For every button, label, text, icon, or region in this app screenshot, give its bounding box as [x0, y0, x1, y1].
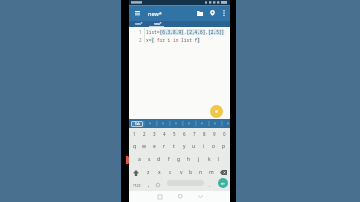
- button[interactable]: 7: [189, 128, 199, 140]
- button[interactable]: .: [205, 179, 215, 191]
- button[interactable]: x: [154, 166, 165, 179]
- button[interactable]: [206, 5, 218, 21]
- button[interactable]: ?123: [129, 179, 145, 191]
- staticText: l: [218, 156, 220, 163]
- staticText: 9: [213, 131, 216, 137]
- staticText: 7: [193, 131, 196, 137]
- button[interactable]: j: [194, 153, 204, 166]
- button[interactable]: c: [165, 166, 176, 179]
- staticText: 5: [173, 131, 176, 137]
- staticText: 0: [223, 131, 226, 137]
- staticText: h: [187, 156, 191, 163]
- button[interactable]: [194, 5, 206, 21]
- staticText: j: [198, 156, 200, 163]
- staticText: ,: [148, 182, 150, 189]
- staticText: o: [212, 143, 216, 150]
- button[interactable]: r: [159, 140, 169, 153]
- staticText: p: [222, 143, 226, 150]
- button[interactable]: o: [209, 140, 219, 153]
- button[interactable]: 6: [179, 128, 189, 140]
- button[interactable]: [215, 179, 230, 191]
- staticText: 2: [139, 37, 142, 43]
- staticText: 3: [153, 131, 156, 137]
- staticText: 4: [163, 131, 166, 137]
- staticText: 8: [203, 131, 206, 137]
- button[interactable]: e: [149, 140, 159, 153]
- staticText: u: [192, 143, 196, 150]
- button[interactable]: 9: [209, 128, 219, 140]
- button[interactable]: 3: [149, 128, 159, 140]
- button[interactable]: 5: [169, 128, 179, 140]
- button[interactable]: new*: [148, 21, 167, 27]
- staticText: i: [203, 143, 205, 150]
- button[interactable]: 1: [130, 128, 139, 140]
- button[interactable]: [210, 105, 223, 118]
- button[interactable]: new*: [129, 21, 148, 27]
- button[interactable]: a: [135, 153, 144, 166]
- staticText: x=[ for i in list f]: [146, 37, 200, 43]
- button[interactable]: l: [214, 153, 224, 166]
- button[interactable]: h: [184, 153, 194, 166]
- staticText: 1: [133, 131, 136, 137]
- button[interactable]: b: [186, 166, 196, 179]
- staticText: z: [147, 169, 150, 176]
- staticText: c: [169, 169, 172, 176]
- button[interactable]: 0: [219, 128, 229, 140]
- staticText: n: [199, 169, 203, 176]
- staticText: f: [168, 156, 170, 163]
- button[interactable]: [153, 179, 162, 191]
- button[interactable]: d: [154, 153, 164, 166]
- staticText: 6: [183, 131, 186, 137]
- button[interactable]: w: [139, 140, 149, 153]
- button[interactable]: [190, 191, 210, 202]
- staticText: x: [158, 169, 161, 176]
- button[interactable]: f: [164, 153, 174, 166]
- staticText: list=[6,3,8,9],[2,4,6],[2,5]]: [146, 29, 225, 35]
- button[interactable]: [129, 166, 143, 179]
- staticText: 2: [143, 131, 146, 137]
- staticText: a: [138, 156, 141, 163]
- staticText: new*: [135, 22, 143, 26]
- button[interactable]: n: [196, 166, 206, 179]
- staticText: b: [189, 169, 193, 176]
- button[interactable]: q: [130, 140, 139, 153]
- button[interactable]: z: [143, 166, 154, 179]
- staticText: g: [177, 156, 181, 163]
- button[interactable]: ,: [145, 179, 153, 191]
- button[interactable]: [216, 166, 230, 179]
- staticText: e: [153, 143, 156, 150]
- button[interactable]: y: [179, 140, 189, 153]
- staticText: Tab: [135, 122, 140, 126]
- staticText: 1: [139, 29, 142, 35]
- staticText: m: [209, 169, 214, 176]
- button[interactable]: s: [144, 153, 154, 166]
- staticText: ?123: [133, 183, 141, 188]
- staticText: t: [173, 143, 175, 150]
- button[interactable]: t: [169, 140, 179, 153]
- button[interactable]: v: [176, 166, 186, 179]
- button[interactable]: 8: [199, 128, 209, 140]
- button[interactable]: i: [199, 140, 209, 153]
- button[interactable]: [150, 191, 170, 202]
- staticText: y: [183, 143, 186, 150]
- button[interactable]: p: [219, 140, 229, 153]
- staticText: k: [208, 156, 211, 163]
- button[interactable]: g: [174, 153, 184, 166]
- staticText: w: [142, 143, 146, 150]
- staticText: new*: [154, 22, 162, 26]
- button[interactable]: Tab: [131, 121, 143, 127]
- staticText: .: [209, 182, 211, 189]
- button[interactable]: k: [204, 153, 214, 166]
- button[interactable]: new*: [148, 10, 162, 17]
- button[interactable]: [218, 5, 229, 21]
- staticText: r: [163, 143, 166, 150]
- button[interactable]: 4: [159, 128, 169, 140]
- button[interactable]: 2: [139, 128, 149, 140]
- staticText: d: [157, 156, 161, 163]
- button[interactable]: m: [206, 166, 216, 179]
- button[interactable]: [129, 5, 145, 21]
- button[interactable]: [170, 191, 190, 202]
- button[interactable]: u: [189, 140, 199, 153]
- staticText: q: [133, 143, 137, 150]
